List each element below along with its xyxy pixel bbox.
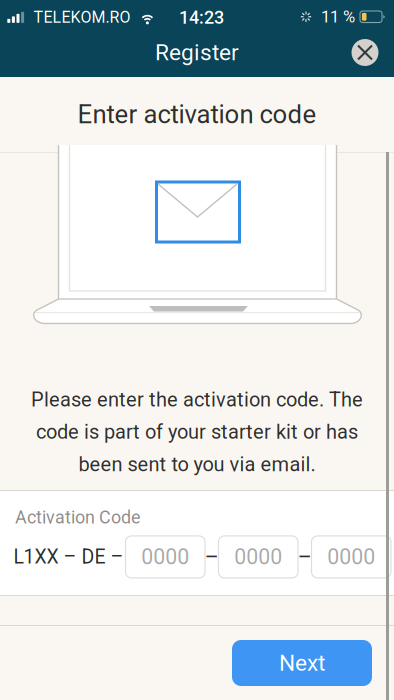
- staticText: TELEKOM.RO: [33, 8, 130, 27]
- staticText: Next: [279, 650, 325, 676]
- button[interactable]: Next: [232, 640, 372, 686]
- staticText: –: [298, 544, 312, 569]
- staticText: 11 %: [321, 7, 355, 26]
- button[interactable]: Activation code segment: [125, 536, 205, 578]
- staticText: 0000: [141, 544, 189, 569]
- staticText: Activation Code: [15, 507, 140, 528]
- staticText: Enter activation code: [77, 99, 316, 130]
- staticText: –: [205, 544, 219, 569]
- staticText: 0000: [327, 544, 375, 569]
- staticText: code is part of your starter kit or has: [36, 420, 358, 444]
- button[interactable]: Activation code segment: [218, 536, 298, 578]
- staticText: 14:23: [179, 7, 224, 28]
- staticText: 0000: [234, 544, 282, 569]
- staticText: Please enter the activation code. The: [31, 388, 363, 411]
- button[interactable]: Activation code segment: [311, 536, 391, 578]
- staticText: L1XX – DE –: [13, 545, 123, 568]
- staticText: Register: [155, 39, 239, 66]
- staticText: been sent to you via email.: [78, 453, 315, 476]
- button[interactable]: Close: [343, 30, 387, 74]
